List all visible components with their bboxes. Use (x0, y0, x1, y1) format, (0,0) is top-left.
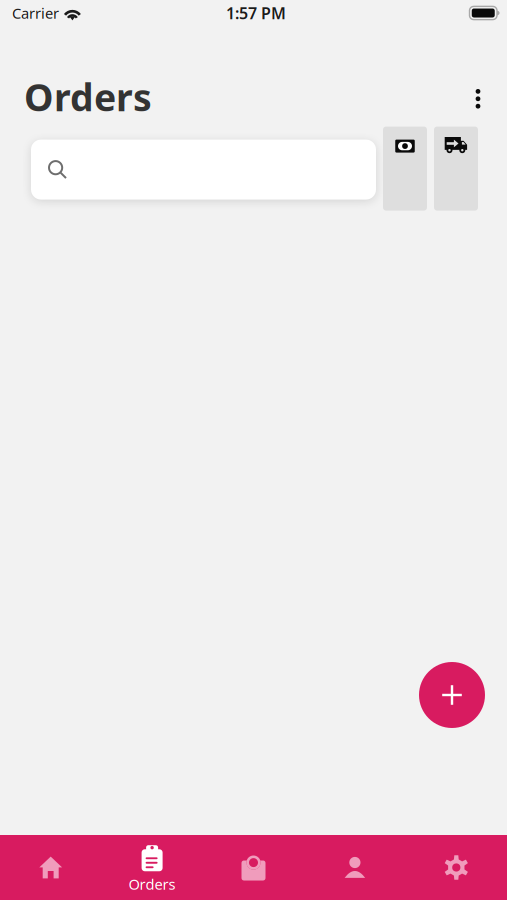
staticText: 1:57 PM (226, 2, 286, 24)
button[interactable]: Add order (419, 662, 485, 728)
button[interactable]: Payments (383, 127, 427, 211)
button[interactable]: More options (459, 80, 497, 118)
button[interactable]: Account (304, 835, 406, 900)
staticText: Carrier (12, 3, 59, 23)
staticText: Orders (24, 72, 152, 122)
button[interactable]: Products (203, 835, 304, 900)
button[interactable]: Settings (406, 835, 507, 900)
staticText: Orders (129, 874, 176, 894)
button[interactable]: Orders (101, 835, 203, 900)
button[interactable]: Home (0, 835, 101, 900)
button[interactable]: Shipping (434, 127, 478, 211)
